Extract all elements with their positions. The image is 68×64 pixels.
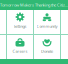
staticText: Careers — [12, 48, 27, 54]
button[interactable]: Careers — [7, 35, 33, 59]
staticText: Settings — [13, 23, 26, 29]
button[interactable]: Settings — [7, 10, 33, 34]
staticText: Donate — [41, 48, 53, 54]
staticText: Tomorrow Makers Thanking the Citizens of… — [0, 2, 68, 8]
staticText: Community — [36, 23, 57, 29]
button[interactable]: Donate — [34, 35, 60, 59]
button[interactable]: Community — [34, 10, 60, 34]
